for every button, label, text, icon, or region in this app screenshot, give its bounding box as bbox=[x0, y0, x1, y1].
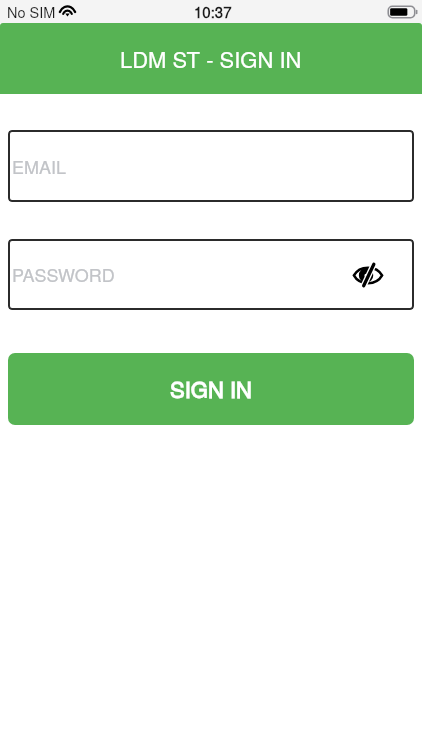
staticText: 10:37 bbox=[194, 1, 232, 22]
button[interactable]: SIGN IN bbox=[8, 353, 414, 425]
button[interactable]: EMAIL bbox=[8, 130, 414, 202]
staticText: SIGN IN bbox=[170, 373, 252, 405]
staticText: EMAIL bbox=[12, 153, 67, 179]
button[interactable]: LDM ST - SIGN IN bbox=[0, 23, 422, 94]
staticText: LDM ST - SIGN IN bbox=[120, 43, 302, 75]
button[interactable]: Show password bbox=[349, 256, 387, 294]
staticText: No SIM bbox=[7, 1, 56, 22]
staticText: PASSWORD bbox=[12, 261, 115, 287]
button[interactable]: PASSWORD bbox=[8, 239, 414, 310]
